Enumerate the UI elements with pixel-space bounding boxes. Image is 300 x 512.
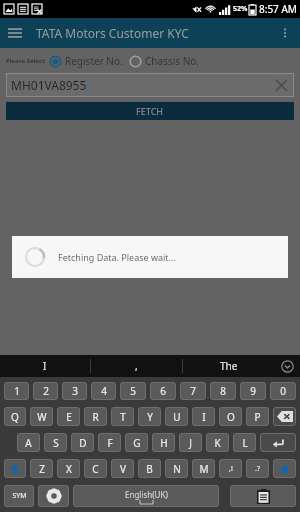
button[interactable]: Register No. <box>49 54 123 68</box>
button[interactable]: Y <box>138 407 161 426</box>
button[interactable]: Shift <box>4 459 26 478</box>
button[interactable]: Keyboard settings <box>38 485 69 507</box>
button[interactable]: 0 <box>270 382 296 400</box>
button[interactable]: K <box>206 433 229 452</box>
staticText: G <box>133 436 141 450</box>
button[interactable]: H <box>152 433 175 452</box>
button[interactable]: Clear text <box>273 77 289 93</box>
button[interactable]: G <box>125 433 148 452</box>
staticText: MH01VA8955 <box>11 77 87 93</box>
button[interactable]: Backspace <box>273 407 296 426</box>
button[interactable]: 1 <box>4 382 29 400</box>
button[interactable]: M <box>192 459 215 478</box>
button[interactable]: FETCH <box>6 102 294 120</box>
button[interactable]: I <box>192 407 215 426</box>
button[interactable]: 7 <box>180 382 206 400</box>
staticText: B <box>146 462 153 476</box>
button[interactable]: Enter <box>260 433 296 452</box>
staticText: N <box>173 462 181 476</box>
staticText: X <box>66 462 72 476</box>
button[interactable]: SYM <box>4 485 34 507</box>
button[interactable]: 9 <box>240 382 266 400</box>
staticText: I <box>43 359 47 373</box>
button[interactable]: C <box>84 459 107 478</box>
button[interactable]: ,! <box>219 459 242 478</box>
button[interactable]: I <box>0 355 90 377</box>
button[interactable]: More options <box>270 18 300 48</box>
staticText: ,! <box>229 464 233 474</box>
staticText: Q <box>11 410 19 424</box>
staticText: H <box>160 436 168 450</box>
staticText: Please Select <box>6 57 45 65</box>
staticText: E <box>66 410 72 424</box>
staticText: TATA Motors Customer KYC <box>36 25 189 41</box>
staticText: 4 <box>101 384 107 398</box>
button[interactable]: T <box>111 407 134 426</box>
button[interactable]: F <box>98 433 121 452</box>
staticText: 8:57 AM <box>259 2 297 16</box>
staticText: T <box>120 410 126 424</box>
button[interactable]: W <box>30 407 53 426</box>
staticText: K <box>214 436 221 450</box>
staticText: Chassis No. <box>145 54 199 68</box>
button[interactable]: 3 <box>62 382 87 400</box>
staticText: , <box>135 359 138 373</box>
button[interactable]: Shift <box>273 459 296 478</box>
staticText: Y <box>147 410 153 424</box>
staticText: D <box>79 436 87 450</box>
button[interactable]: MH01VA8955 <box>6 73 294 97</box>
button[interactable]: Open navigation drawer <box>0 18 30 48</box>
button[interactable]: Z <box>30 459 53 478</box>
button[interactable]: 8 <box>210 382 236 400</box>
button[interactable]: E <box>57 407 80 426</box>
staticText: 1 <box>14 384 20 398</box>
staticText: 8 <box>220 384 226 398</box>
staticText: 7 <box>190 384 196 398</box>
button[interactable]: 2 <box>33 382 58 400</box>
button[interactable]: V <box>111 459 134 478</box>
staticText: 3 <box>72 384 78 398</box>
button[interactable]: J <box>179 433 202 452</box>
button[interactable]: A <box>17 433 40 452</box>
button[interactable]: English(UK) <box>73 485 219 507</box>
button[interactable]: P <box>246 407 269 426</box>
button[interactable]: L <box>233 433 256 452</box>
button[interactable]: 4 <box>91 382 116 400</box>
staticText: S <box>53 436 59 450</box>
button[interactable]: N <box>165 459 188 478</box>
staticText: R <box>92 410 99 424</box>
staticText: Fetching Data. Please wait... <box>58 251 176 263</box>
staticText: W <box>37 410 47 424</box>
button[interactable]: Chassis No. <box>129 54 199 68</box>
staticText: 5 <box>130 384 136 398</box>
staticText: M <box>199 462 209 476</box>
button[interactable]: X <box>57 459 80 478</box>
button[interactable]: 5 <box>120 382 146 400</box>
staticText: P <box>254 410 261 424</box>
button[interactable]: O <box>219 407 242 426</box>
staticText: L <box>242 436 248 450</box>
button[interactable]: 6 <box>150 382 176 400</box>
button[interactable]: U <box>165 407 188 426</box>
button[interactable]: R <box>84 407 107 426</box>
staticText: O <box>227 410 235 424</box>
button[interactable]: , <box>91 355 182 377</box>
button[interactable]: Clipboard <box>230 485 296 507</box>
button[interactable]: B <box>138 459 161 478</box>
button[interactable]: S <box>44 433 67 452</box>
button[interactable]: Expand suggestions <box>274 355 300 377</box>
button[interactable]: .? <box>246 459 269 478</box>
staticText: U <box>173 410 181 424</box>
staticText: 0 <box>280 384 286 398</box>
staticText: V <box>120 462 126 476</box>
staticText: A <box>25 436 32 450</box>
staticText: FETCH <box>136 105 164 117</box>
staticText: 9 <box>250 384 256 398</box>
staticText: .? <box>255 464 260 474</box>
button[interactable]: D <box>71 433 94 452</box>
staticText: C <box>92 462 99 476</box>
staticText: 2 <box>43 384 49 398</box>
button[interactable]: The <box>183 355 274 377</box>
staticText: The <box>220 359 238 373</box>
button[interactable]: Q <box>4 407 26 426</box>
